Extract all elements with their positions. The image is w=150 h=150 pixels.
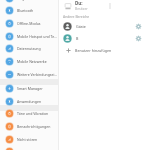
staticText: Andere Bereiche (63, 14, 90, 19)
staticText: Weitere Verbindungsein... (17, 72, 58, 77)
staticText: Datennutzung (17, 46, 41, 51)
button[interactable]: Nicht stören (0, 133, 58, 145)
staticText: Besitzer (75, 6, 88, 11)
button[interactable]: Bluetooth (0, 4, 58, 16)
button[interactable]: Töne und Vibration (0, 107, 58, 119)
button[interactable]: Benachrichtigungen (0, 120, 58, 132)
staticText: Mobile Hotspot und Tet... (17, 34, 58, 39)
staticText: Flugmodus (17, 0, 36, 1)
staticText: B (76, 36, 79, 41)
staticText: Anwendungen (17, 99, 42, 104)
button[interactable]: B (59, 33, 150, 44)
button[interactable]: Du: (59, 0, 150, 11)
button[interactable]: Weitere Verbindungsein... (0, 68, 58, 80)
staticText: Mobile Netzwerke (17, 59, 47, 64)
button[interactable]: Einstellungen (134, 34, 143, 43)
button[interactable]: Benutzer hinzufügen (59, 45, 150, 56)
button[interactable]: Einstellungen (134, 22, 143, 31)
staticText: Nicht stören (17, 137, 38, 142)
button[interactable]: Gäste (59, 21, 150, 32)
staticText: Gäste (76, 24, 86, 29)
staticText: Benutzer hinzufügen (75, 48, 112, 53)
button[interactable]: Datennutzung (0, 42, 58, 54)
button[interactable]: Anwendungen (0, 95, 58, 107)
button[interactable]: Mehr (106, 2, 114, 10)
staticText: Smart Manager (17, 86, 43, 91)
staticText: Offline-Modus (17, 21, 41, 26)
button[interactable]: Flugmodus (0, 0, 58, 4)
button[interactable]: Smart Manager (0, 82, 58, 94)
staticText: Benachrichtigungen (17, 124, 51, 129)
staticText: Bluetooth (17, 8, 34, 13)
button[interactable]: Anzeige (0, 145, 58, 150)
button[interactable]: Mobile Netzwerke (0, 55, 58, 67)
button[interactable]: Mobile Hotspot und Tet... (0, 30, 58, 42)
staticText: Töne und Vibration (17, 111, 49, 116)
button[interactable]: Offline-Modus (0, 17, 58, 29)
staticText: Du: (75, 0, 83, 6)
